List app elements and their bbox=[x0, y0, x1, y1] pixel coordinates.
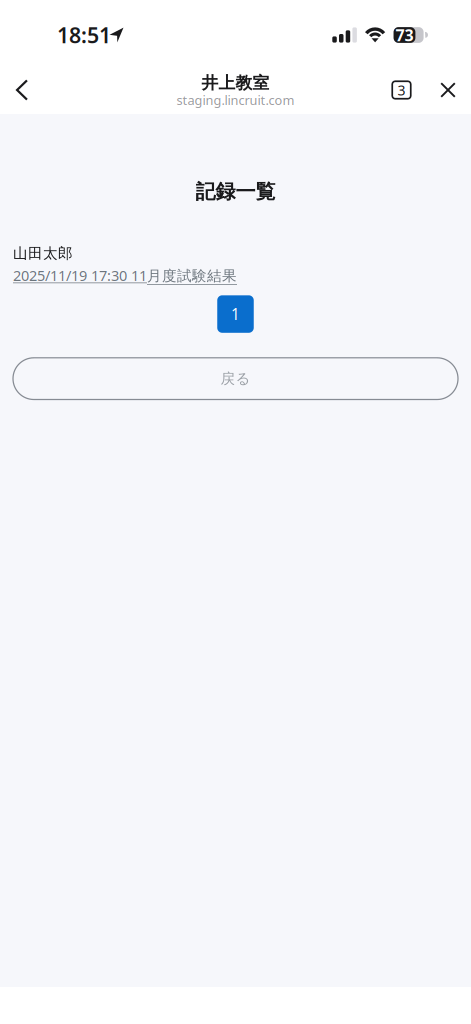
staticText: 2025/11/19 17:30 11月度試験結果 bbox=[13, 265, 237, 285]
staticText: 井上教室 bbox=[201, 72, 269, 93]
button[interactable]: Tabs bbox=[378, 64, 425, 116]
button[interactable]: Close bbox=[425, 64, 471, 116]
button[interactable]: 戻る bbox=[13, 358, 458, 399]
staticText: 1 bbox=[231, 304, 240, 324]
staticText: staging.lincruit.com bbox=[176, 91, 294, 109]
staticText: 山田太郎 bbox=[13, 244, 73, 262]
button[interactable]: 1 bbox=[217, 295, 254, 333]
button[interactable]: Back bbox=[0, 64, 44, 116]
staticText: 戻る bbox=[220, 369, 250, 388]
staticText: 3 bbox=[397, 80, 405, 100]
staticText: 73 bbox=[396, 24, 414, 46]
staticText: 記録一覧 bbox=[195, 179, 275, 204]
staticText: 18:51 bbox=[57, 21, 111, 49]
button[interactable]: 2025/11/19 17:30 11月度試験結果 bbox=[13, 265, 237, 285]
